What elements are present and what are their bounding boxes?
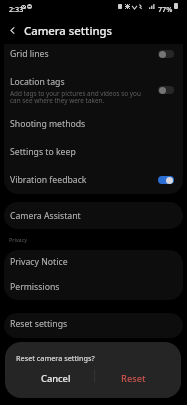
button[interactable]: Reset — [95, 365, 171, 391]
button[interactable]: Shooting methods — [4, 110, 183, 138]
button[interactable]: Camera Assistant — [4, 202, 183, 229]
button[interactable]: Settings to keep — [4, 138, 183, 166]
staticText: Reset — [121, 372, 146, 385]
button[interactable]: Reset settings — [4, 313, 183, 334]
staticText: Privacy — [9, 236, 27, 243]
button[interactable]: Location tags — [4, 70, 183, 110]
staticText: 77% — [158, 4, 173, 14]
staticText: Location tags — [10, 76, 65, 88]
staticText: Shooting methods — [10, 118, 86, 130]
button[interactable]: Vibration feedback — [4, 166, 183, 194]
staticText: Grid lines — [10, 48, 49, 60]
staticText: Reset camera settings? — [16, 353, 95, 363]
button[interactable]: Back — [0, 17, 24, 43]
staticText: Permissions — [10, 281, 60, 293]
staticText: Reset settings — [10, 318, 68, 330]
button[interactable]: Cancel — [17, 365, 95, 391]
button[interactable]: Privacy Notice — [4, 250, 183, 274]
staticText: Add tags to your pictures and videos so … — [10, 89, 141, 105]
staticText: Camera settings — [24, 23, 113, 38]
button[interactable]: Permissions — [4, 274, 183, 300]
staticText: Vibration feedback — [10, 174, 87, 186]
staticText: Settings to keep — [10, 146, 76, 158]
staticText: Cancel — [41, 372, 71, 385]
staticText: Camera Assistant — [10, 210, 81, 222]
staticText: 2:33 — [9, 4, 24, 14]
button[interactable]: Grid lines — [4, 44, 183, 70]
staticText: Privacy Notice — [10, 256, 68, 268]
